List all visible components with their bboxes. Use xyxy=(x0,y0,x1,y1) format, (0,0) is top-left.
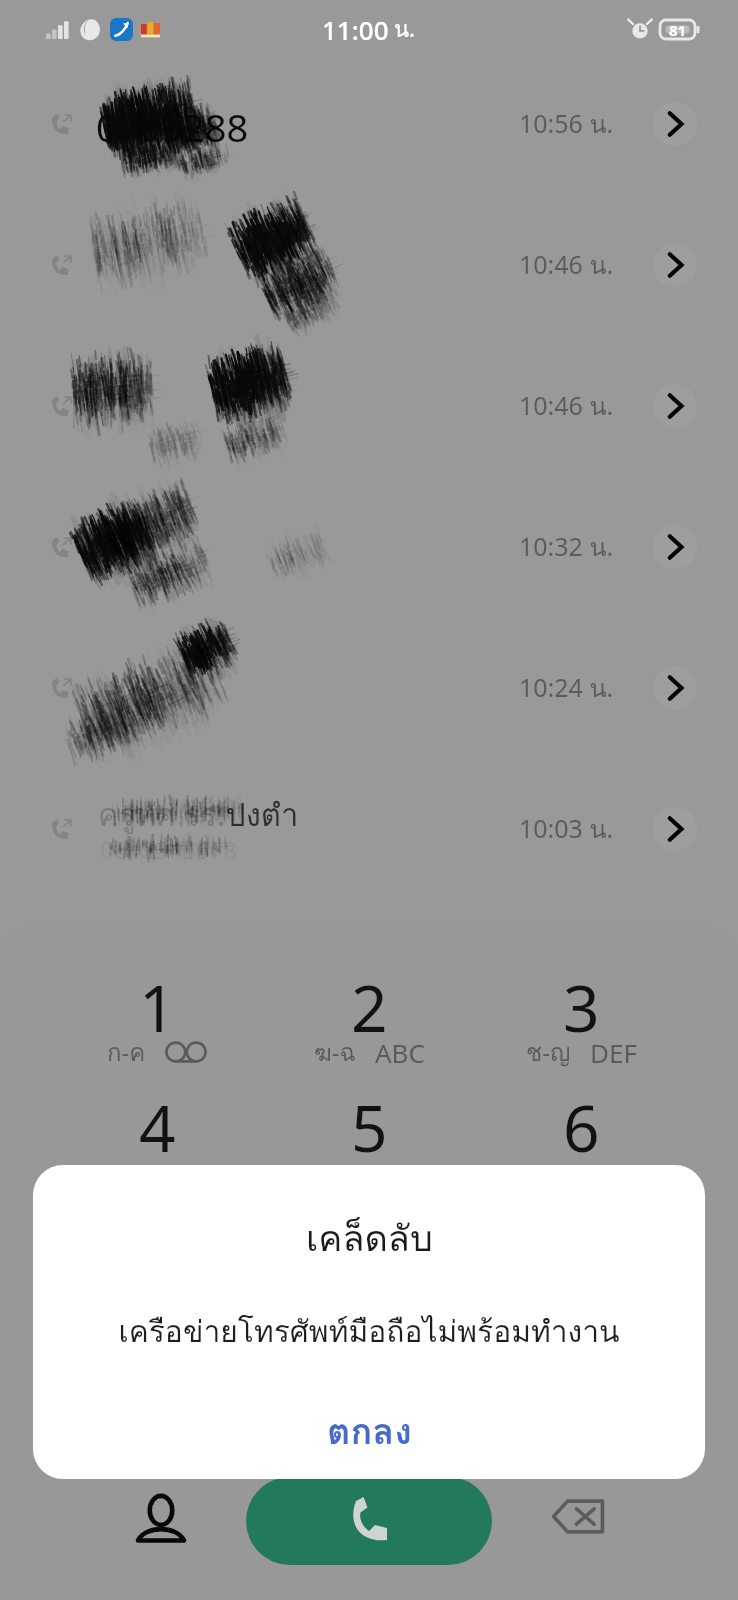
button[interactable]: Call log entry 10:32 น. xyxy=(0,477,738,617)
staticText: ฎ-ณ xyxy=(100,1153,147,1191)
button[interactable]: 1 xyxy=(51,964,263,1084)
staticText: ABC xyxy=(375,1035,425,1070)
staticText: 10:46 น. xyxy=(519,386,614,426)
staticText: 2 xyxy=(351,964,388,1051)
staticText: ปงตำ xyxy=(226,790,299,839)
staticText: DEF xyxy=(590,1035,637,1070)
staticText: JKL xyxy=(380,1155,417,1190)
staticText: GHI xyxy=(166,1155,214,1190)
staticText: MNO xyxy=(578,1155,642,1190)
staticText: 0899288 xyxy=(96,101,249,153)
staticText: 1 xyxy=(139,964,176,1051)
staticText: 6 xyxy=(563,1084,600,1171)
button[interactable]: Call details xyxy=(633,646,717,730)
staticText: ตกลง xyxy=(327,1403,412,1460)
staticText: เครือข่ายโทรศัพท์มือถือไม่พร้อมทำงาน xyxy=(118,1308,620,1356)
button[interactable]: Call log entry 10:46 น. xyxy=(0,336,738,476)
staticText: ธ-บ xyxy=(521,1153,559,1191)
button[interactable]: Contacts xyxy=(97,1454,225,1582)
button[interactable]: ตกลง xyxy=(299,1395,440,1468)
staticText: 10:32 น. xyxy=(519,527,614,567)
button[interactable]: 6 xyxy=(475,1084,687,1204)
button[interactable]: Call log entry 10:46 น. xyxy=(0,195,738,335)
staticText: 4 xyxy=(139,1084,176,1171)
button[interactable]: Call details xyxy=(633,505,717,589)
staticText: 10:56 น. xyxy=(519,104,614,144)
button[interactable]: 4 xyxy=(51,1084,263,1204)
button[interactable]: Call log entry 10:56 น. xyxy=(0,54,738,194)
button[interactable]: Call details xyxy=(633,787,717,871)
button[interactable]: Call log entry 10:24 น. xyxy=(0,618,738,758)
button[interactable]: 3 xyxy=(475,964,687,1084)
staticText: ฆ-ฉ xyxy=(314,1033,356,1071)
staticText: 81 xyxy=(669,20,687,39)
button[interactable]: 5 xyxy=(263,1084,475,1204)
staticText: ก-ค xyxy=(107,1033,146,1071)
button[interactable]: Call xyxy=(246,1477,492,1565)
staticText: ช-ญ xyxy=(526,1033,571,1071)
staticText: 5 xyxy=(351,1084,388,1171)
staticText: 10:24 น. xyxy=(519,668,614,708)
staticText: 0812345678 xyxy=(100,833,238,866)
button[interactable]: 2 xyxy=(263,964,475,1084)
staticText: 10:03 น. xyxy=(519,809,614,849)
staticText: ครูทัศ รร. xyxy=(98,790,226,839)
staticText: น. xyxy=(394,12,416,47)
staticText: เคล็ดลับ xyxy=(306,1210,433,1267)
staticText: 3 xyxy=(563,964,600,1051)
staticText: 11:00 xyxy=(322,12,389,47)
button[interactable]: Call details xyxy=(633,364,717,448)
button[interactable]: Call details xyxy=(633,223,717,307)
staticText: 10:46 น. xyxy=(519,245,614,285)
button[interactable]: Call log entry 10:03 น. xyxy=(0,759,738,899)
staticText: ด-ท xyxy=(321,1153,361,1191)
button[interactable]: Backspace xyxy=(514,1452,642,1580)
button[interactable]: Call details xyxy=(633,82,717,166)
